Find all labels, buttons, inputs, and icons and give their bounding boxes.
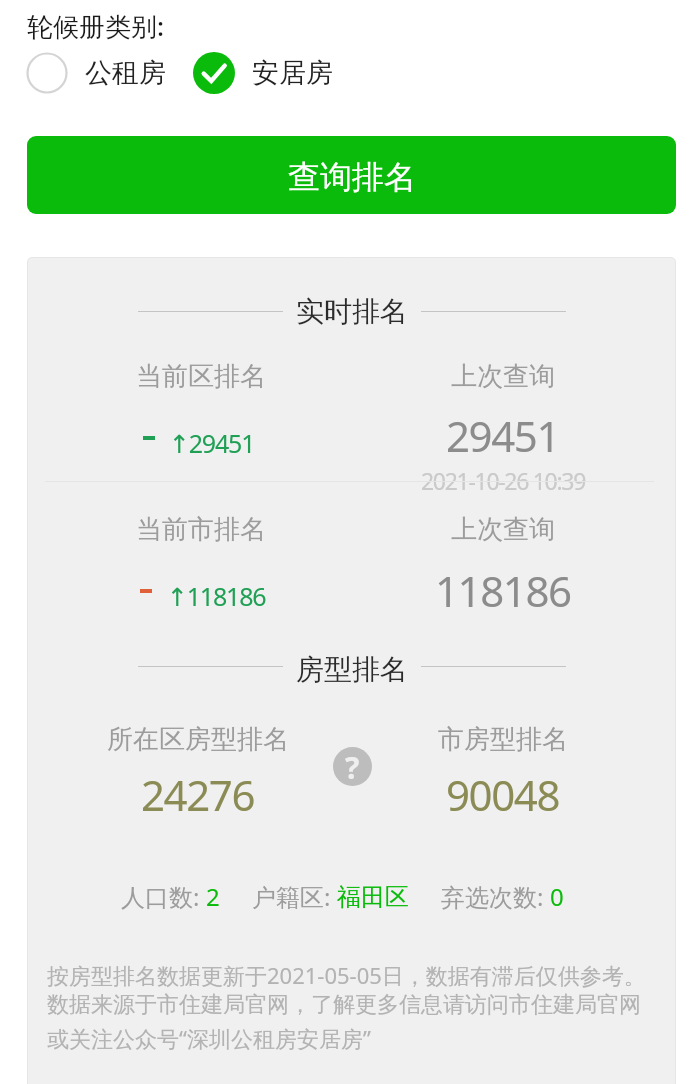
staticText: 当前市排名	[136, 513, 266, 546]
staticText: 人口数:	[121, 880, 206, 913]
staticText: 0	[550, 880, 564, 913]
staticText: ?	[345, 747, 360, 786]
staticText: 市房型排名	[438, 723, 568, 756]
staticText: 或关注公众号“深圳公租房安居房”	[47, 1023, 371, 1053]
staticText: 按房型排名数据更新于2021-05-05日，数据有滞后仅供参考。	[47, 960, 646, 990]
staticText: 公租房	[85, 56, 166, 90]
staticText: 118186	[435, 562, 571, 619]
staticText: 数据来源于市住建局官网，了解更多信息请访问市住建局官网	[47, 991, 641, 1019]
staticText: 福田区	[337, 882, 409, 912]
staticText: 所在区房型排名	[107, 723, 289, 756]
staticText: ↑118186	[167, 579, 266, 613]
staticText: 上次查询	[451, 360, 555, 393]
staticText: 当前区排名	[136, 360, 266, 393]
button[interactable]: Help	[333, 747, 372, 786]
staticText: 29451	[446, 407, 560, 464]
staticText: 2	[206, 880, 220, 913]
staticText: 轮候册类别:	[27, 8, 165, 44]
staticText: ↑29451	[169, 426, 255, 460]
button[interactable]: 公租房	[26, 52, 166, 94]
staticText: 上次查询	[451, 513, 555, 546]
staticText: 90048	[446, 766, 560, 823]
staticText: 实时排名	[296, 294, 408, 329]
staticText: 弃选次数:	[441, 880, 550, 913]
staticText: 24276	[141, 766, 255, 823]
button[interactable]: 查询排名	[27, 136, 676, 214]
staticText: 房型排名	[296, 652, 408, 687]
staticText: 查询排名	[288, 157, 416, 197]
staticText: 安居房	[252, 56, 333, 90]
staticText: 2021-10-26 10:39	[421, 465, 586, 496]
button[interactable]: 安居房	[193, 52, 333, 94]
staticText: 户籍区:	[252, 880, 337, 913]
